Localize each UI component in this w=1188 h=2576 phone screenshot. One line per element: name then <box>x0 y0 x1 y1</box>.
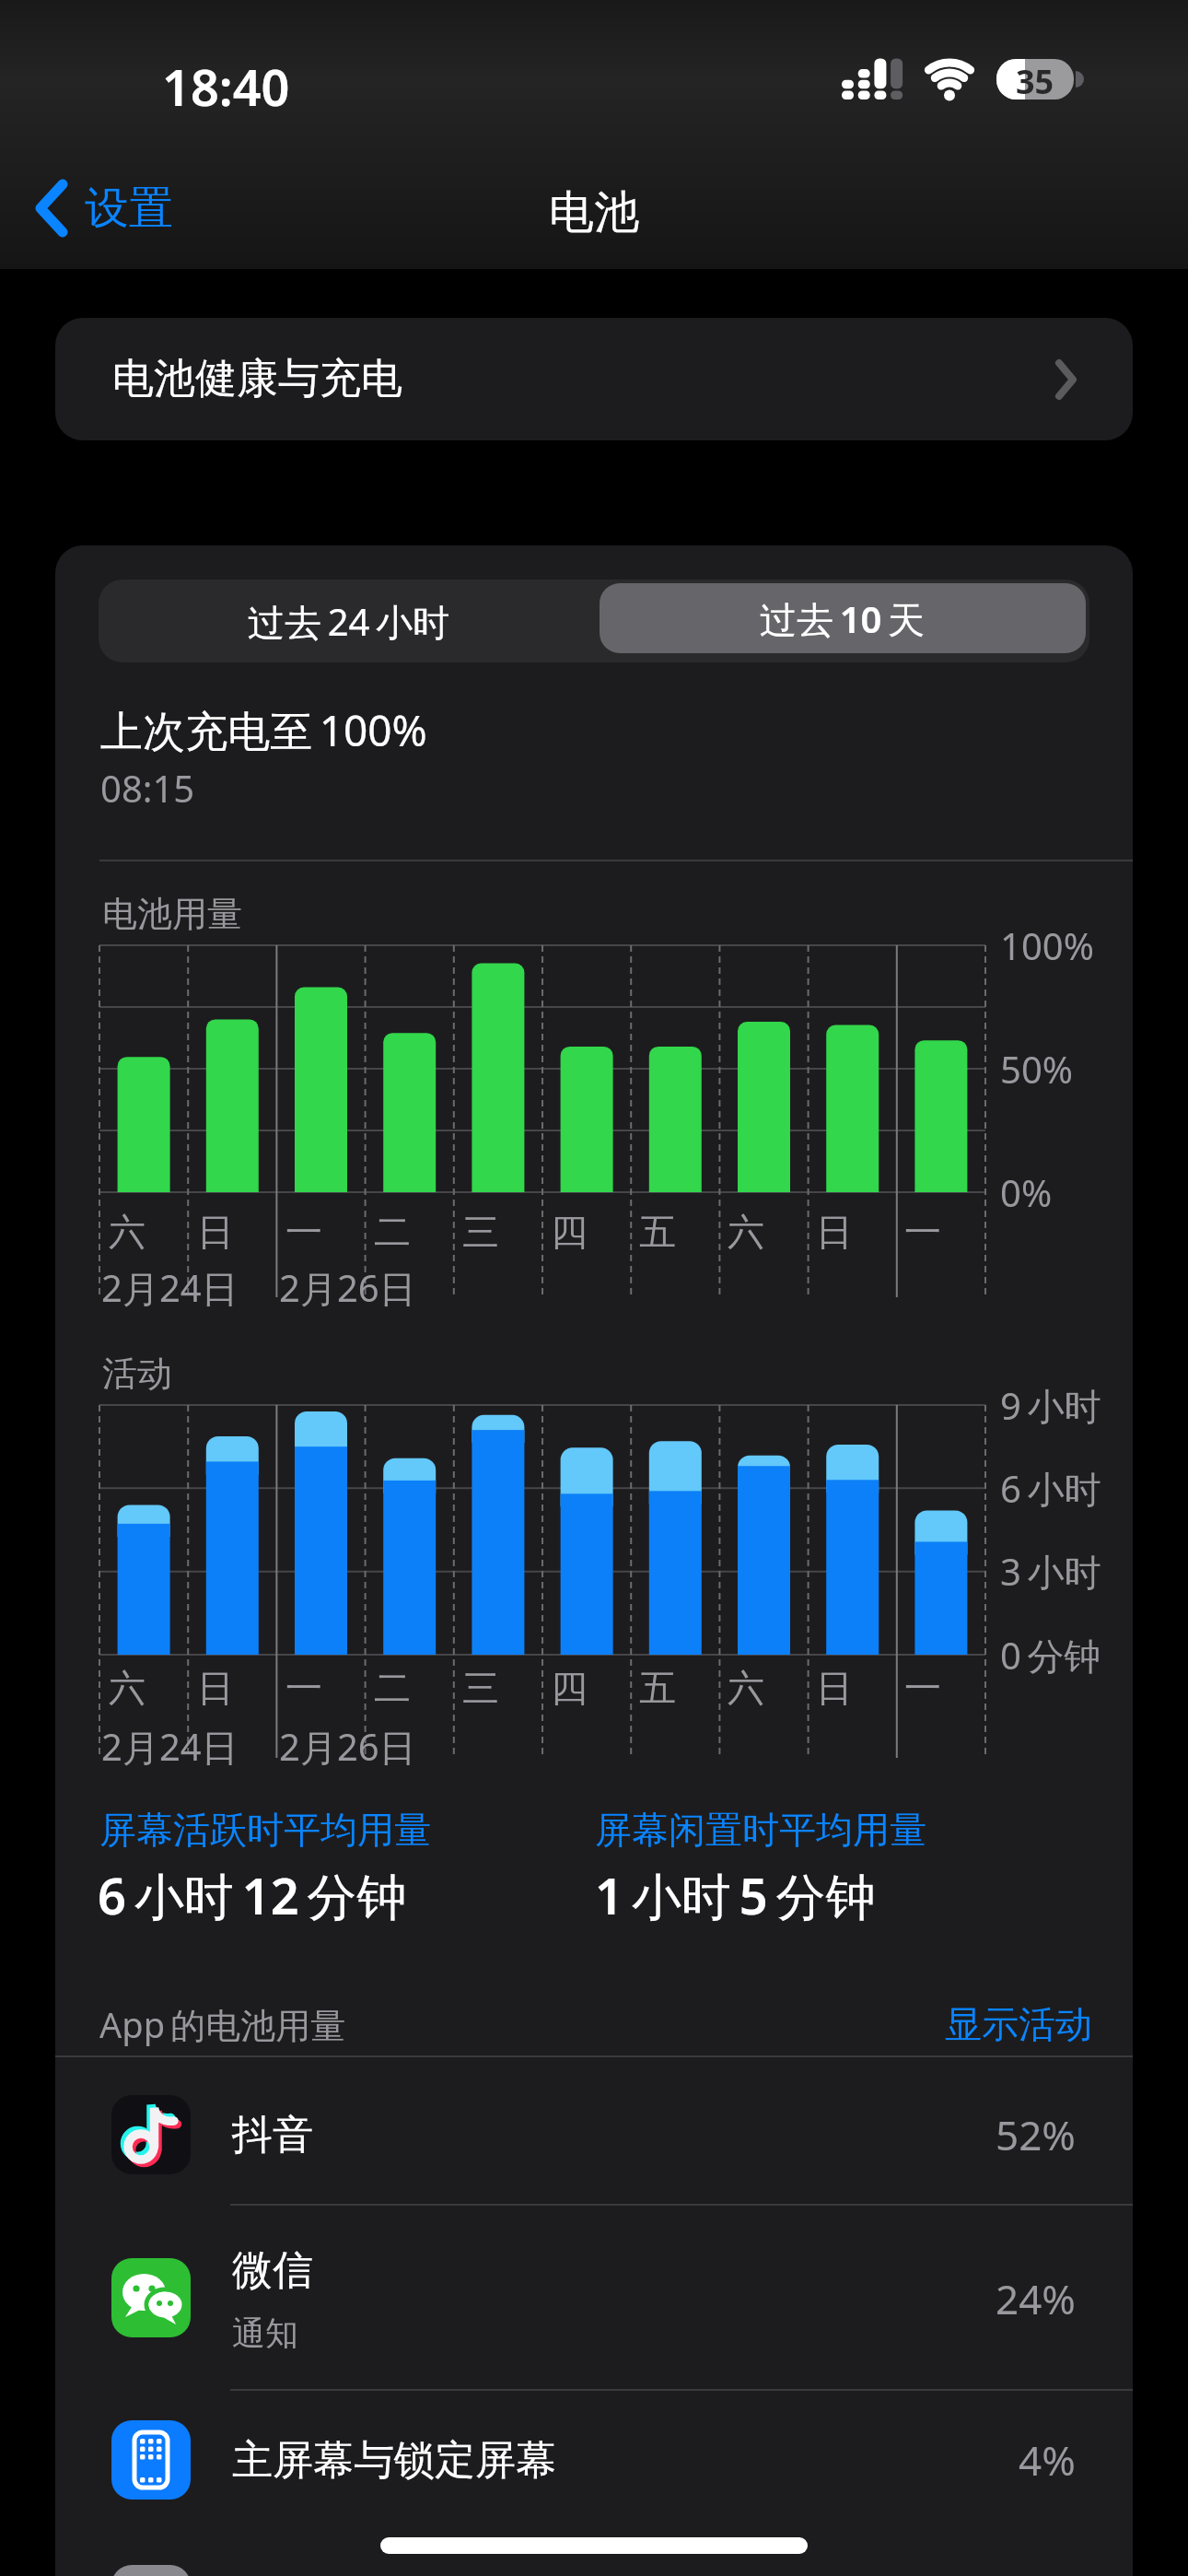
staticText: 日 <box>816 1209 853 1255</box>
staticText: 一 <box>285 1665 322 1711</box>
staticText: 3 小时 <box>1000 1546 1101 1597</box>
staticText: 一 <box>285 1209 322 1255</box>
staticText: 过去 24 小时 <box>248 596 450 647</box>
staticText: 屏幕闲置时平均用量 <box>595 1807 926 1853</box>
staticText: 6 小时 12 分钟 <box>98 1861 407 1929</box>
staticText: 一 <box>904 1209 941 1255</box>
staticText: 4% <box>1019 2432 1076 2488</box>
staticText: 五 <box>639 1209 676 1255</box>
staticText: 三 <box>462 1209 499 1255</box>
button[interactable]: 显示活动 <box>700 1996 1092 2052</box>
staticText: App 的电池用量 <box>99 2000 346 2048</box>
staticText: 100% <box>1000 920 1094 970</box>
staticText: 52% <box>996 2107 1076 2162</box>
button[interactable] <box>55 2057 1133 2204</box>
staticText: 电池用量 <box>102 892 242 936</box>
staticText: 24% <box>996 2271 1076 2326</box>
staticText: 电池健康与充电 <box>112 353 402 405</box>
staticText: 主屏幕与锁定屏幕 <box>232 2435 556 2486</box>
staticText: 三 <box>462 1665 499 1711</box>
staticText: 18:40 <box>162 53 290 108</box>
button[interactable]: 电池健康与充电 <box>55 318 1133 440</box>
staticText: 微信 <box>232 2245 313 2296</box>
staticText: 2月24日 <box>101 1721 239 1772</box>
staticText: 日 <box>197 1209 234 1255</box>
staticText: 35 <box>1016 59 1054 100</box>
staticText: 08:15 <box>100 763 195 813</box>
staticText: 上次充电至 100% <box>100 701 427 756</box>
staticText: 6 小时 <box>1000 1463 1101 1514</box>
button[interactable]: 过去 24 小时 <box>99 580 600 662</box>
staticText: 五 <box>639 1665 676 1711</box>
staticText: 活动 <box>102 1352 172 1396</box>
staticText: 2月26日 <box>279 1721 416 1772</box>
staticText: 四 <box>551 1209 588 1255</box>
staticText: 一 <box>904 1665 941 1711</box>
staticText: 2月26日 <box>279 1262 416 1313</box>
staticText: 屏幕活跃时平均用量 <box>99 1807 431 1853</box>
staticText: 9 小时 <box>1000 1380 1101 1431</box>
staticText: 通知 <box>232 2313 298 2354</box>
button[interactable] <box>55 2206 1133 2389</box>
button[interactable]: 设置 <box>28 175 267 241</box>
staticText: 设置 <box>85 181 173 236</box>
staticText: 0% <box>1000 1167 1053 1217</box>
staticText: 电池 <box>549 184 639 240</box>
staticText: 日 <box>816 1665 853 1711</box>
staticText: 六 <box>728 1209 764 1255</box>
staticText: 抖音 <box>232 2110 313 2160</box>
button[interactable] <box>600 583 1086 653</box>
staticText: 六 <box>109 1209 146 1255</box>
staticText: 六 <box>109 1665 146 1711</box>
staticText: 0 分钟 <box>1000 1630 1101 1680</box>
staticText: 二 <box>374 1209 411 1255</box>
staticText: 显示活动 <box>945 2001 1092 2047</box>
staticText: 1 小时 5 分钟 <box>595 1861 876 1929</box>
staticText: 四 <box>551 1665 588 1711</box>
button[interactable] <box>55 2391 1133 2538</box>
staticText: 六 <box>728 1665 764 1711</box>
staticText: 2月24日 <box>101 1262 239 1313</box>
staticText: 50% <box>1000 1044 1073 1094</box>
staticText: 过去 10 天 <box>760 593 926 644</box>
staticText: 二 <box>374 1665 411 1711</box>
staticText: 日 <box>197 1665 234 1711</box>
